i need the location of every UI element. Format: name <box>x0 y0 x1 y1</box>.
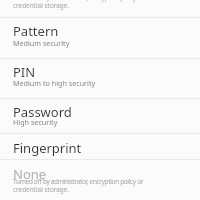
staticText: High security <box>13 117 58 127</box>
button[interactable]: Password <box>0 99 200 133</box>
button[interactable]: PIN <box>0 59 200 98</box>
staticText: Medium to high security <box>13 78 96 88</box>
staticText: Fingerprint <box>13 139 82 157</box>
staticText: Password <box>13 103 72 121</box>
staticText: Pattern <box>13 22 59 40</box>
staticText: Medium security <box>13 38 70 48</box>
button[interactable]: Pattern <box>0 18 200 58</box>
staticText: credential storage. <box>13 1 70 10</box>
staticText: None <box>13 165 47 183</box>
staticText: Turned off by administrator, encryption … <box>13 0 144 2</box>
staticText: PIN <box>13 63 36 81</box>
staticText: Turned off by administrator, encryption … <box>13 177 144 186</box>
button[interactable]: Fingerprint <box>0 134 200 159</box>
staticText: credential storage. <box>13 185 70 194</box>
